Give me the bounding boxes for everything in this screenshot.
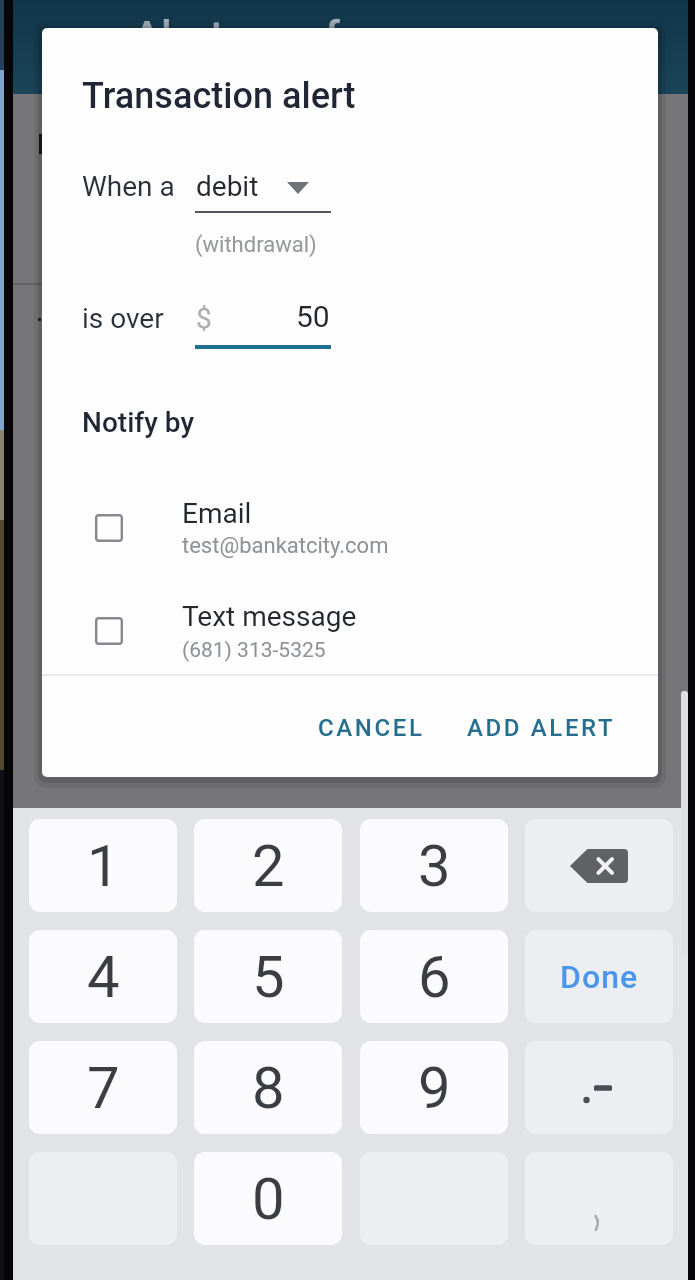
staticText: 50 bbox=[296, 299, 330, 334]
staticText: debit bbox=[196, 170, 259, 203]
staticText: 2 bbox=[252, 832, 285, 900]
button[interactable] bbox=[525, 1041, 673, 1134]
button[interactable] bbox=[195, 164, 355, 214]
button[interactable]: 1 bbox=[29, 819, 177, 912]
button[interactable]: 6 bbox=[360, 930, 508, 1023]
button[interactable]: 3 bbox=[360, 819, 508, 912]
button[interactable]: 0 bbox=[194, 1152, 342, 1245]
staticText: 0 bbox=[252, 1165, 285, 1233]
staticText: 1 bbox=[87, 832, 120, 900]
button[interactable]: 4 bbox=[29, 930, 177, 1023]
staticText: Text message bbox=[182, 600, 357, 633]
staticText: 4 bbox=[87, 943, 120, 1011]
staticText: is over bbox=[82, 302, 164, 335]
button[interactable]: 5 bbox=[194, 930, 342, 1023]
staticText: 3 bbox=[418, 832, 451, 900]
staticText: When a bbox=[82, 170, 175, 203]
staticText: Done bbox=[560, 958, 639, 996]
button[interactable] bbox=[82, 598, 482, 660]
staticText: 6 bbox=[418, 943, 451, 1011]
button[interactable]: 7 bbox=[29, 1041, 177, 1134]
staticText: Transaction alert bbox=[82, 75, 356, 117]
staticText: 9 bbox=[418, 1054, 451, 1122]
staticText: (681) 313-5325 bbox=[182, 638, 326, 663]
button[interactable]: ADD ALERT bbox=[451, 706, 631, 750]
button[interactable] bbox=[525, 819, 673, 912]
staticText: CANCEL bbox=[318, 714, 425, 742]
button[interactable]: 2 bbox=[194, 819, 342, 912]
staticText: 7 bbox=[87, 1054, 120, 1122]
staticText: 8 bbox=[252, 1054, 285, 1122]
button[interactable] bbox=[82, 494, 482, 556]
staticText: $ bbox=[196, 302, 212, 335]
staticText: (withdrawal) bbox=[195, 232, 317, 258]
staticText: test@bankatcity.com bbox=[182, 533, 389, 559]
button[interactable]: 8 bbox=[194, 1041, 342, 1134]
button[interactable] bbox=[525, 1152, 673, 1245]
button[interactable]: CANCEL bbox=[307, 706, 435, 750]
staticText: Email bbox=[182, 497, 252, 530]
staticText: for bbox=[325, 12, 379, 54]
staticText: Alerts bbox=[133, 12, 246, 54]
button[interactable]: Done bbox=[525, 930, 673, 1023]
staticText: 5 bbox=[252, 943, 285, 1011]
staticText: Notify by bbox=[82, 406, 195, 439]
staticText: ADD ALERT bbox=[467, 714, 616, 742]
button[interactable]: 9 bbox=[360, 1041, 508, 1134]
